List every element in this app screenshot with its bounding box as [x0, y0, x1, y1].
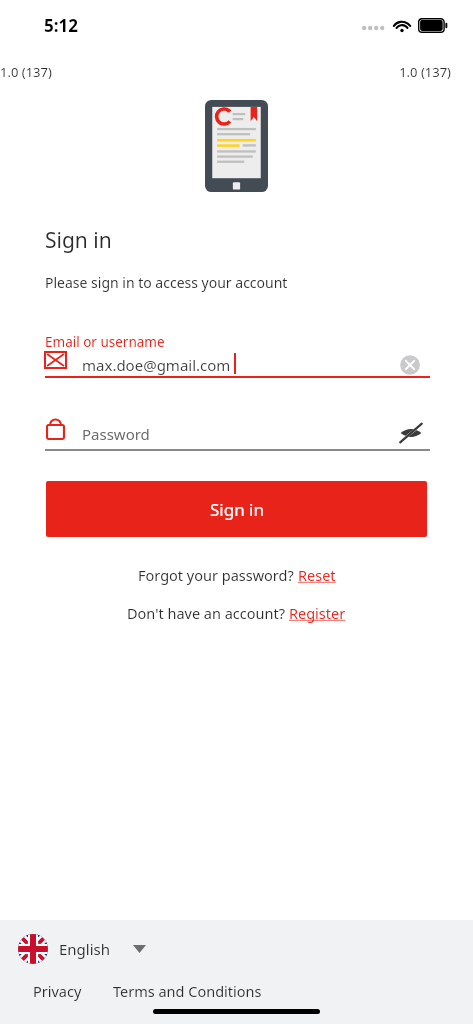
- button[interactable]: [45, 416, 430, 448]
- button[interactable]: Show password: [398, 421, 424, 445]
- staticText: 5:12: [44, 14, 78, 37]
- staticText: Privacy: [33, 981, 82, 1001]
- staticText: Register: [289, 603, 346, 623]
- staticText: 1.0 (137): [0, 63, 451, 81]
- button[interactable]: Terms and Conditions: [113, 981, 262, 1001]
- button[interactable]: Clear: [398, 353, 422, 377]
- button[interactable]: Sign in: [46, 481, 427, 537]
- button[interactable]: English: [18, 934, 146, 964]
- button[interactable]: Register: [289, 603, 346, 623]
- staticText: Don't have an account?: [127, 603, 289, 623]
- staticText: Password: [82, 424, 150, 444]
- staticText: max.doe@gmail.com: [82, 355, 231, 375]
- staticText: Forgot your password?: [138, 565, 298, 585]
- staticText: Please sign in to access your account: [45, 273, 288, 292]
- other: Password: [44, 414, 68, 442]
- button[interactable]: Reset: [298, 565, 336, 585]
- staticText: Terms and Conditions: [113, 981, 262, 1001]
- staticText: Reset: [298, 565, 336, 585]
- staticText: English: [59, 939, 111, 959]
- staticText: 1.0 (137): [0, 63, 451, 81]
- staticText: Sign in: [45, 226, 112, 255]
- other: Email: [44, 350, 68, 370]
- button[interactable]: [45, 348, 430, 380]
- staticText: Sign in: [210, 498, 264, 521]
- staticText: Email or username: [45, 333, 165, 351]
- button[interactable]: Privacy: [33, 981, 82, 1001]
